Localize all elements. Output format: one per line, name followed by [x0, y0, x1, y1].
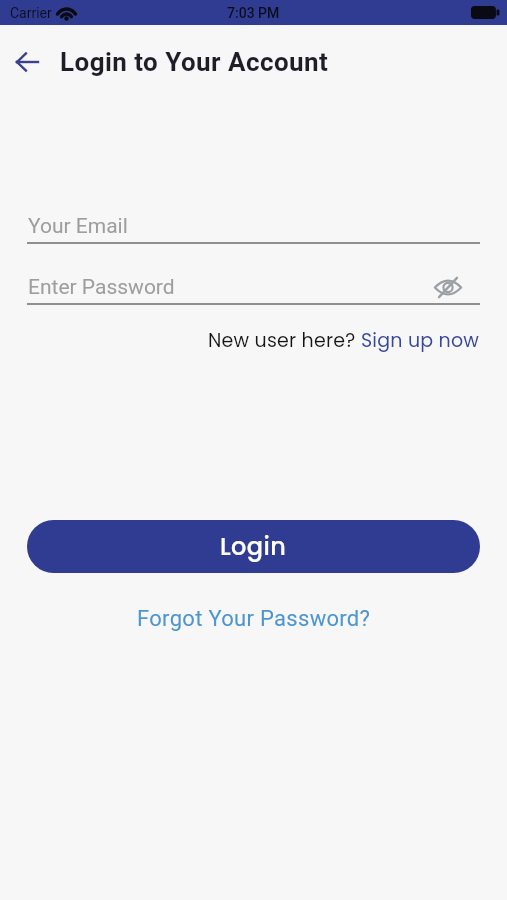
- staticText: Carrier: [10, 5, 52, 21]
- button[interactable]: Forgot Your Password?: [137, 606, 371, 632]
- button[interactable]: Sign up now: [361, 327, 480, 354]
- staticText: Login: [220, 530, 287, 564]
- button[interactable]: Login: [27, 520, 480, 573]
- staticText: Your Email: [28, 214, 128, 239]
- staticText: Login to Your Account: [60, 47, 329, 77]
- button[interactable]: [434, 276, 462, 299]
- staticText: New user here?: [208, 327, 361, 354]
- staticText: 7:03 PM: [227, 5, 280, 21]
- button[interactable]: [7, 42, 47, 82]
- staticText: Enter Password: [28, 275, 175, 300]
